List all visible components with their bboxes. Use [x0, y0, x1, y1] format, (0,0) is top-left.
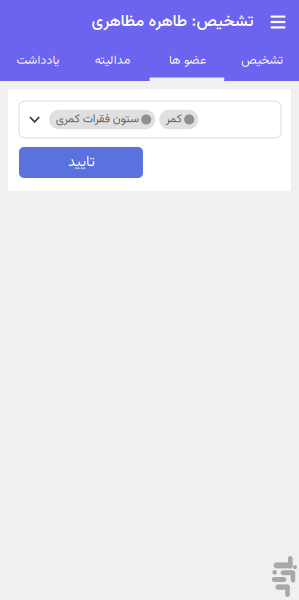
- button[interactable]: تایید: [19, 147, 143, 178]
- button[interactable]: یادداشت: [0, 44, 75, 81]
- button[interactable]: Menu: [266, 10, 290, 34]
- staticText: یادداشت: [16, 51, 59, 70]
- staticText: تشخیص: طاهره مظاهری: [91, 9, 253, 35]
- staticText: تایید: [67, 151, 94, 174]
- button[interactable]: عضو ها: [149, 44, 224, 81]
- staticText: تشخیص: [241, 51, 283, 70]
- staticText: عضو ها: [168, 51, 205, 70]
- button[interactable]: ستون فقرات کمری: [49, 110, 155, 129]
- staticText: ستون فقرات کمری: [55, 110, 138, 128]
- staticText: مدالیته: [94, 51, 130, 70]
- button[interactable]: تشخیص: [224, 44, 299, 81]
- staticText: کمر: [165, 110, 181, 128]
- button[interactable]: مدالیته: [75, 44, 150, 81]
- button[interactable]: کمر: [159, 110, 198, 129]
